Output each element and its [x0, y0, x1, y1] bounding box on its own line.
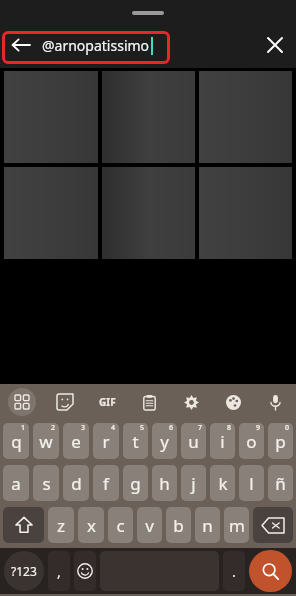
staticText: n: [202, 514, 213, 537]
button[interactable]: 9: [239, 423, 264, 459]
staticText: j: [191, 472, 196, 495]
button[interactable]: h: [152, 465, 177, 501]
button[interactable]: d: [63, 465, 89, 501]
staticText: ñ: [275, 472, 286, 495]
staticText: 7: [198, 423, 203, 433]
button[interactable]: 6: [152, 423, 177, 459]
staticText: 5: [140, 423, 145, 433]
button[interactable]: Clear: [254, 24, 296, 66]
button[interactable]: v: [137, 507, 162, 543]
button[interactable]: @arnopatissimo: [42, 28, 254, 62]
staticText: ?123: [11, 563, 37, 579]
button[interactable]: 3: [63, 423, 89, 459]
button[interactable]: Settings: [170, 384, 212, 420]
button[interactable]: b: [166, 507, 191, 543]
staticText: l: [249, 472, 254, 495]
staticText: x: [87, 514, 96, 537]
staticText: w: [39, 430, 53, 453]
button[interactable]: Shift: [3, 507, 44, 543]
button[interactable]: m: [224, 507, 249, 543]
button[interactable]: 7: [181, 423, 206, 459]
button[interactable]: 1: [3, 423, 29, 459]
button[interactable]: Emoji: [74, 551, 96, 591]
button[interactable]: 4: [93, 423, 119, 459]
staticText: 3: [81, 423, 86, 433]
staticText: y: [160, 430, 169, 453]
staticText: i: [220, 430, 225, 453]
staticText: h: [159, 472, 170, 495]
button[interactable]: k: [210, 465, 235, 501]
button[interactable]: Back: [0, 24, 42, 66]
button[interactable]: Clipboard: [128, 384, 170, 420]
button[interactable]: l: [239, 465, 264, 501]
staticText: 1: [21, 423, 26, 433]
staticText: f: [103, 472, 109, 495]
staticText: o: [246, 430, 257, 453]
staticText: b: [173, 514, 184, 537]
button[interactable]: Voice: [254, 384, 296, 420]
button[interactable]: GIF: [86, 384, 128, 420]
button[interactable]: 8: [210, 423, 235, 459]
button[interactable]: x: [78, 507, 104, 543]
staticText: 9: [256, 423, 261, 433]
button[interactable]: j: [181, 465, 206, 501]
button[interactable]: 0: [268, 423, 293, 459]
button[interactable]: c: [108, 507, 133, 543]
staticText: d: [71, 472, 82, 495]
staticText: g: [130, 472, 141, 495]
staticText: v: [145, 514, 154, 537]
staticText: k: [218, 472, 228, 495]
staticText: 8: [227, 423, 232, 433]
button[interactable]: Period: [223, 551, 245, 591]
button[interactable]: Photo 5: [102, 167, 195, 259]
staticText: 2: [51, 423, 56, 433]
button[interactable]: Comma: [48, 551, 70, 591]
button[interactable]: Stickers: [43, 384, 86, 420]
staticText: @arnopatissimo: [42, 36, 150, 55]
button[interactable]: Themes: [212, 384, 254, 420]
staticText: 6: [169, 423, 174, 433]
button[interactable]: 5: [123, 423, 148, 459]
staticText: q: [11, 430, 22, 453]
staticText: t: [132, 430, 139, 453]
button[interactable]: ?123: [4, 551, 44, 591]
button[interactable]: s: [33, 465, 59, 501]
staticText: a: [11, 472, 21, 495]
staticText: c: [116, 514, 125, 537]
staticText: s: [42, 472, 51, 495]
staticText: 4: [111, 423, 116, 433]
staticText: e: [71, 430, 81, 453]
button[interactable]: g: [123, 465, 148, 501]
button[interactable]: ñ: [268, 465, 293, 501]
button[interactable]: Photo 2: [102, 71, 195, 163]
button[interactable]: z: [48, 507, 74, 543]
staticText: u: [188, 430, 199, 453]
staticText: ,: [57, 562, 61, 581]
staticText: z: [57, 514, 65, 537]
staticText: p: [275, 430, 286, 453]
staticText: .: [232, 562, 236, 581]
staticText: r: [102, 430, 110, 453]
button[interactable]: 2: [33, 423, 59, 459]
button[interactable]: n: [195, 507, 220, 543]
button[interactable]: Search: [249, 550, 292, 592]
staticText: GIF: [99, 395, 116, 409]
button[interactable]: f: [93, 465, 119, 501]
staticText: m: [229, 514, 245, 537]
button[interactable]: Apps: [0, 384, 43, 420]
button[interactable]: a: [3, 465, 29, 501]
button[interactable]: Backspace: [253, 507, 293, 543]
staticText: 0: [285, 423, 290, 433]
